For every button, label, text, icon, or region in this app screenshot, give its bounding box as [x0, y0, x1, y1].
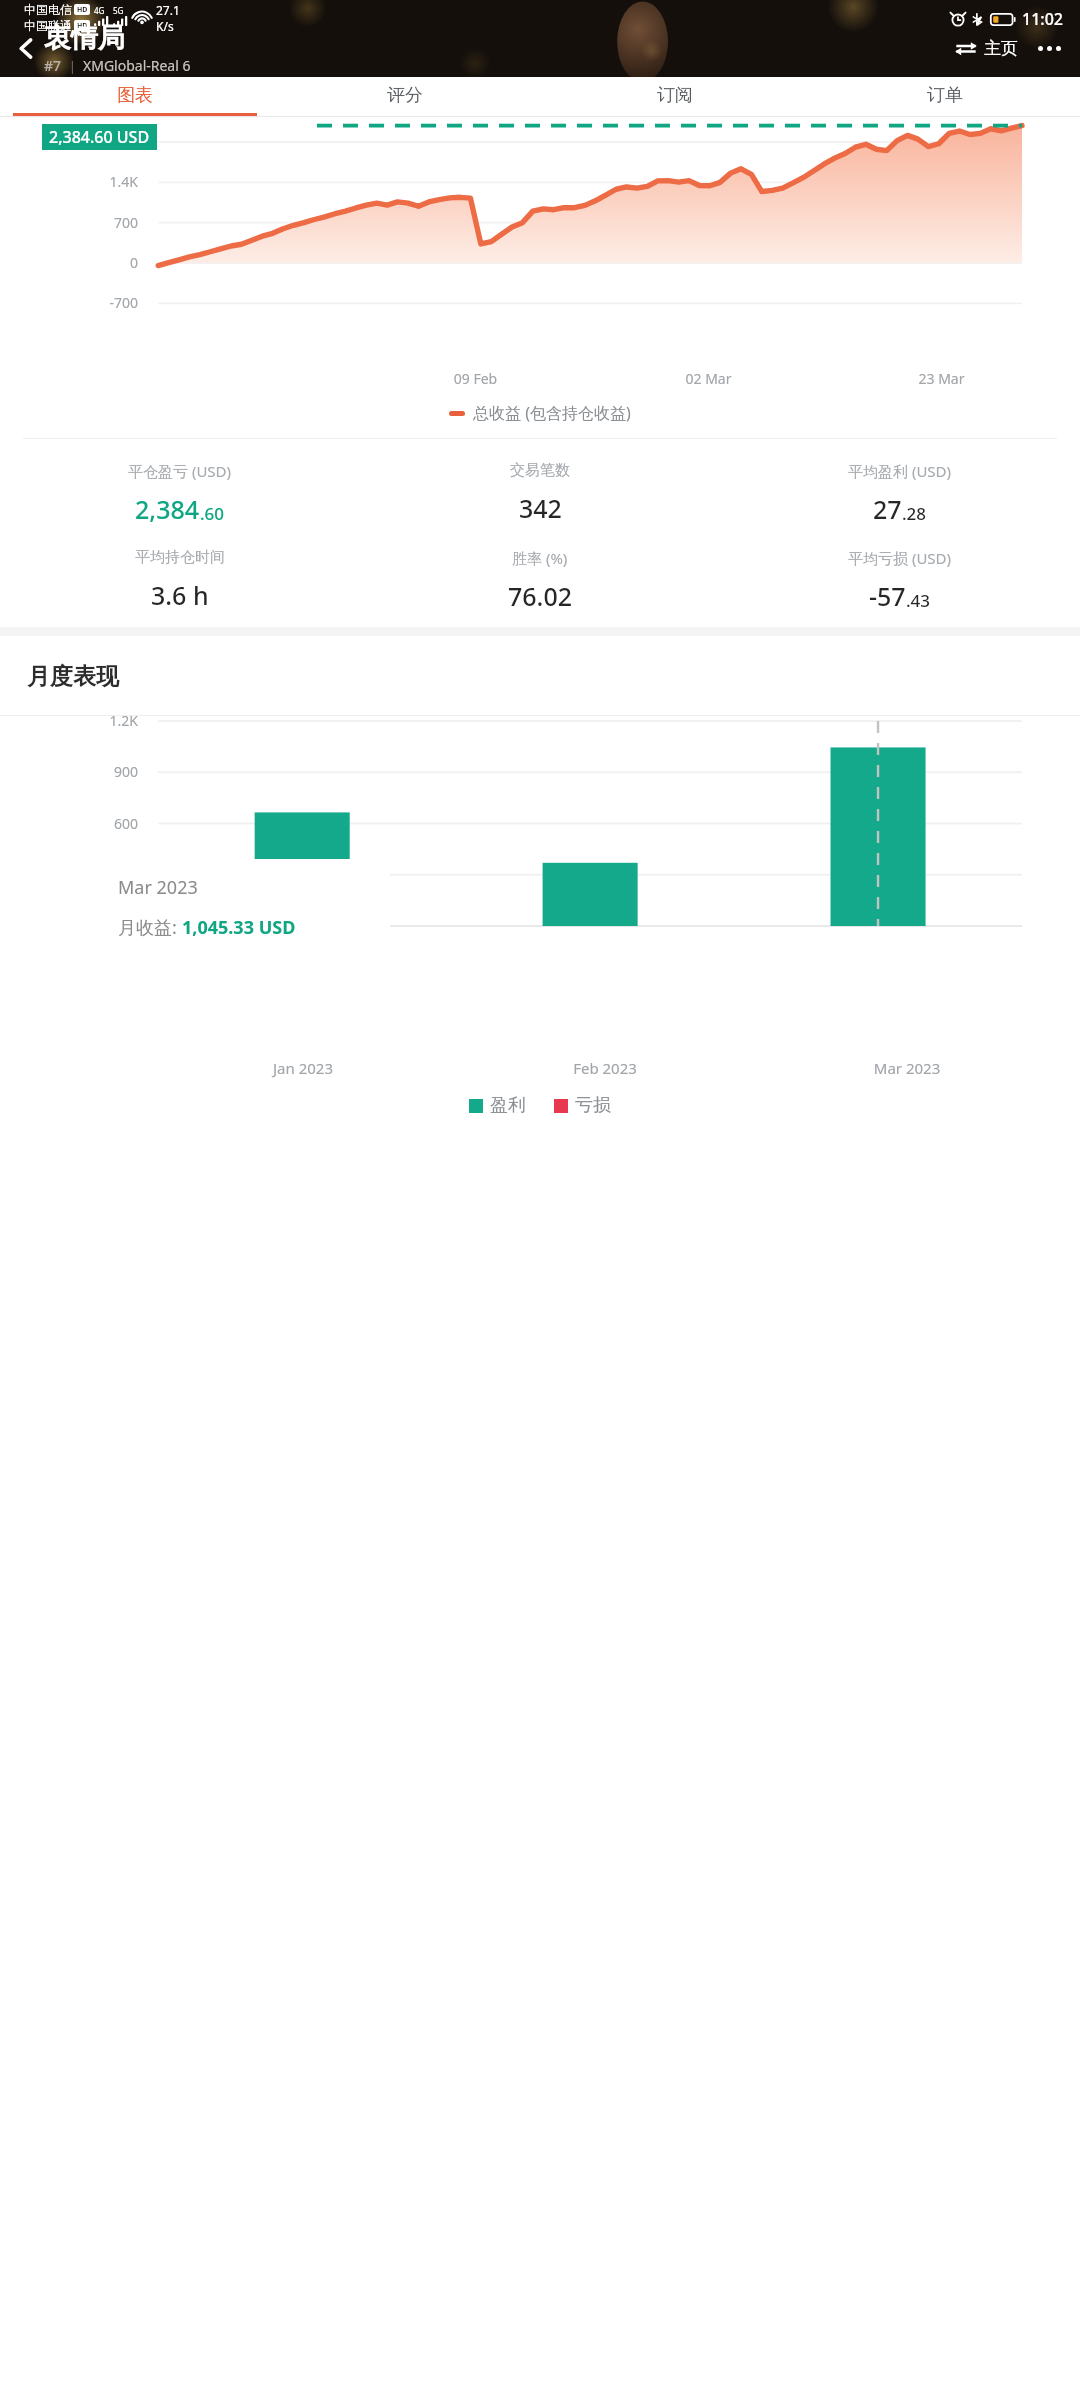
staticText: XMGlobal-Real 6	[83, 56, 191, 75]
staticText: .60	[200, 502, 225, 525]
staticText: 1,045.33 USD	[182, 915, 296, 940]
staticText: |	[62, 57, 83, 75]
staticText: 胜率 (%)	[512, 548, 568, 568]
staticText: 300	[0, 865, 138, 884]
staticText: 月度表现	[27, 662, 119, 691]
staticText: 评分	[387, 84, 423, 107]
staticText: 4G	[94, 5, 105, 16]
staticText: 27.1	[156, 2, 180, 18]
staticText: 09 Feb	[359, 369, 592, 388]
staticText: -57	[869, 579, 906, 613]
staticText: 11:02	[1022, 8, 1063, 30]
button[interactable]: Back	[8, 30, 44, 66]
staticText: 图表	[117, 84, 153, 107]
staticText: 900	[0, 762, 138, 781]
button[interactable]: 订阅	[540, 77, 810, 113]
staticText: 76.02	[508, 579, 573, 613]
staticText: -700	[0, 293, 138, 312]
staticText: 衷情局	[44, 21, 125, 55]
staticText: Jan 2023	[152, 1058, 454, 1078]
staticText: 盈利	[490, 1094, 526, 1117]
staticText: 3.6 h	[151, 578, 209, 612]
staticText: 2.1K	[0, 132, 138, 151]
staticText: 中国联通	[24, 18, 72, 33]
staticText: 02 Mar	[592, 369, 825, 388]
button[interactable]: 订单	[810, 77, 1080, 113]
staticText: 700	[0, 213, 138, 232]
staticText: 平均亏损 (USD)	[848, 548, 952, 568]
button[interactable]: 图表	[0, 77, 270, 113]
staticText: 平仓盈亏 (USD)	[128, 461, 232, 481]
staticText: 1.4K	[0, 172, 138, 191]
staticText: HD	[77, 21, 88, 31]
staticText: 亏损	[575, 1094, 611, 1117]
staticText: #7	[44, 56, 62, 75]
staticText: 5G	[113, 5, 124, 16]
staticText: 2,384.60 USD	[49, 126, 150, 148]
button[interactable]: 主页	[951, 34, 1022, 63]
button[interactable]: 评分	[270, 77, 540, 113]
staticText: .28	[902, 502, 927, 525]
staticText: 27	[873, 492, 902, 526]
staticText: 1.2K	[0, 711, 138, 730]
staticText: 订单	[927, 84, 963, 107]
staticText: K/s	[156, 18, 174, 34]
staticText: 平均持仓时间	[135, 548, 225, 567]
staticText: 总收益 (包含持仓收益)	[473, 402, 631, 424]
staticText: 2,384	[135, 492, 200, 526]
staticText: 0	[0, 253, 138, 272]
staticText: Mar 2023	[756, 1058, 1058, 1078]
staticText: 交易笔数	[510, 461, 570, 480]
staticText: 月收益:	[118, 915, 182, 940]
staticText: Mar 2023	[118, 875, 198, 900]
staticText: Feb 2023	[454, 1058, 756, 1078]
staticText: HD	[77, 5, 88, 15]
staticText: 342	[519, 491, 562, 525]
staticText: 0	[0, 916, 138, 935]
staticText: 主页	[984, 38, 1018, 59]
staticText: 中国电信	[24, 2, 72, 17]
staticText: 23 Mar	[825, 369, 1058, 388]
staticText: 600	[0, 814, 138, 833]
staticText: 订阅	[657, 84, 693, 107]
staticText: .43	[906, 589, 931, 612]
staticText: 平均盈利 (USD)	[848, 461, 952, 481]
button[interactable]: More options	[1033, 32, 1065, 64]
